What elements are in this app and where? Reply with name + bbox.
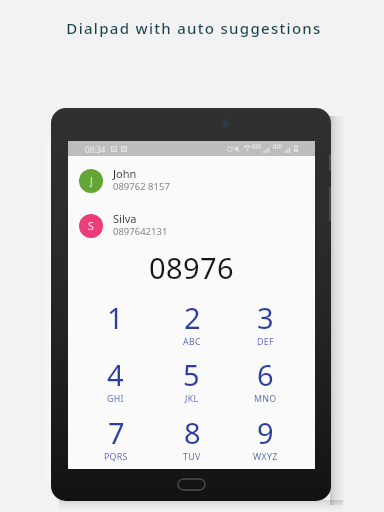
button[interactable]: Dial 1 [78, 298, 153, 355]
staticText: DEF [257, 336, 274, 348]
button[interactable]: J [68, 158, 315, 203]
staticText: 3 [257, 298, 274, 337]
staticText: J [90, 174, 93, 188]
button[interactable]: Dial 6 MNO [228, 355, 303, 412]
staticText: 0897642131 [113, 225, 168, 238]
staticText: S [88, 219, 94, 233]
button[interactable]: Dial 3 DEF [228, 298, 303, 355]
staticText: GHI [107, 393, 124, 405]
staticText: 08976 [149, 248, 234, 284]
staticText: 5 [183, 355, 200, 394]
staticText: Dialpad with auto suggestions [66, 18, 322, 38]
button[interactable]: Dial 9 WXYZ [228, 413, 303, 470]
staticText: JKL [185, 393, 199, 405]
staticText: 1 [107, 298, 124, 337]
staticText: ABC [183, 336, 201, 348]
staticText: TUV [183, 451, 201, 463]
staticText: Silva [113, 211, 137, 226]
staticText: 8 [184, 413, 201, 452]
staticText: 2 [184, 298, 201, 337]
button[interactable]: Dial 8 TUV [154, 413, 229, 470]
staticText: 9 [257, 413, 274, 452]
staticText: WXYZ [253, 451, 278, 463]
button[interactable]: Dial 2 ABC [154, 298, 229, 355]
button[interactable]: Dial 4 GHI [78, 355, 153, 412]
staticText: 08:34 [85, 144, 106, 155]
staticText: John [113, 166, 137, 181]
staticText: 6 [257, 355, 274, 394]
button[interactable]: Dial 7 PQRS [78, 413, 153, 470]
button[interactable]: Dial 5 JKL [154, 355, 229, 412]
staticText: 089762 8157 [113, 180, 170, 193]
staticText: 4 [107, 355, 124, 394]
button[interactable]: S [68, 203, 315, 248]
staticText: MNO [254, 393, 277, 405]
staticText: PQRS [104, 451, 128, 463]
staticText: 7 [108, 413, 125, 452]
